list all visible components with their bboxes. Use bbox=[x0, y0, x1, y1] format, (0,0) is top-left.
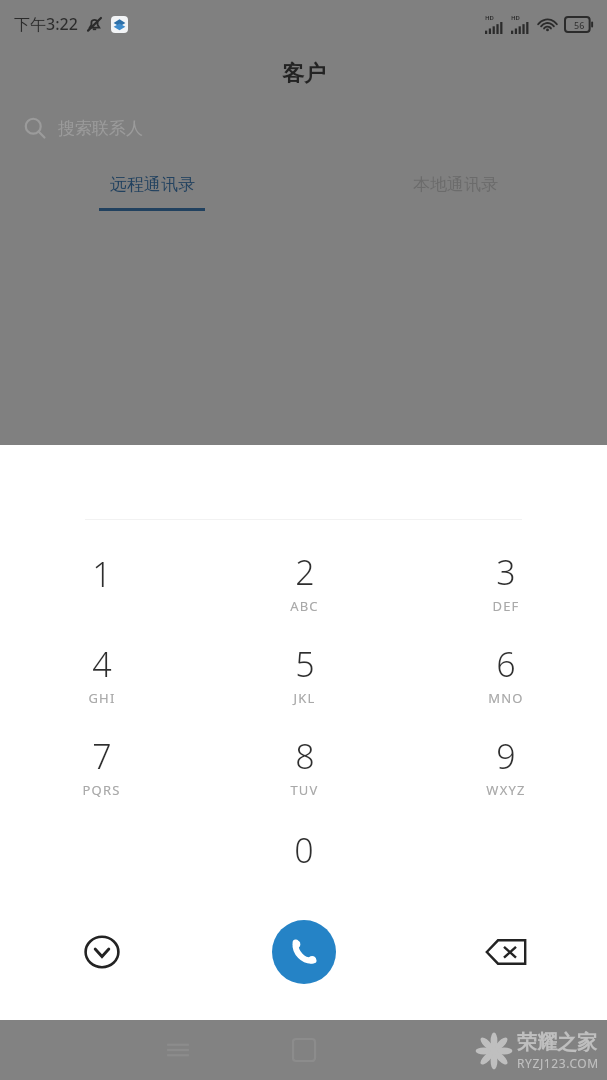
staticText: 客户 bbox=[282, 60, 326, 88]
staticText: 56 bbox=[574, 19, 585, 31]
button[interactable]: 5 bbox=[203, 628, 405, 720]
button[interactable]: 0 bbox=[203, 812, 405, 904]
staticText: 4 bbox=[92, 641, 112, 687]
staticText: 3 bbox=[496, 549, 516, 595]
button[interactable]: 2 bbox=[203, 536, 405, 628]
staticText: 9 bbox=[496, 733, 516, 779]
staticText: MNO bbox=[488, 689, 524, 707]
staticText: PQRS bbox=[82, 781, 121, 799]
staticText: DEF bbox=[492, 597, 520, 615]
staticText: 1 bbox=[92, 551, 112, 597]
staticText: 8 bbox=[295, 733, 315, 779]
staticText: HD bbox=[511, 14, 520, 22]
button[interactable]: Backspace bbox=[477, 923, 535, 981]
staticText: 2 bbox=[295, 549, 315, 595]
staticText: 0 bbox=[294, 827, 314, 873]
button[interactable]: 7 bbox=[0, 720, 203, 812]
staticText: TUV bbox=[290, 781, 319, 799]
staticText: 7 bbox=[92, 733, 112, 779]
button[interactable]: Call bbox=[272, 920, 336, 984]
staticText: WXYZ bbox=[486, 781, 526, 799]
staticText: 荣耀之家 bbox=[517, 1030, 597, 1055]
staticText: 远程通讯录 bbox=[110, 174, 195, 195]
staticText: GHI bbox=[88, 689, 116, 707]
staticText: JKL bbox=[293, 689, 316, 707]
staticText: 6 bbox=[496, 641, 516, 687]
button[interactable]: 3 bbox=[405, 536, 607, 628]
staticText: 下午3:22 bbox=[14, 13, 78, 35]
staticText: 搜索联系人 bbox=[58, 118, 143, 139]
button[interactable]: 远程通讯录 bbox=[0, 156, 303, 226]
button[interactable]: 4 bbox=[0, 628, 203, 720]
button[interactable]: 9 bbox=[405, 720, 607, 812]
button[interactable]: Hide keypad bbox=[73, 923, 131, 981]
button[interactable]: 6 bbox=[405, 628, 607, 720]
button[interactable]: 8 bbox=[203, 720, 405, 812]
staticText: 本地通讯录 bbox=[413, 174, 498, 195]
staticText: ABC bbox=[290, 597, 319, 615]
button[interactable]: 1 bbox=[0, 536, 203, 628]
staticText: HD bbox=[485, 14, 494, 22]
staticText: 5 bbox=[295, 641, 315, 687]
staticText: RYZJ123.COM bbox=[517, 1055, 599, 1071]
